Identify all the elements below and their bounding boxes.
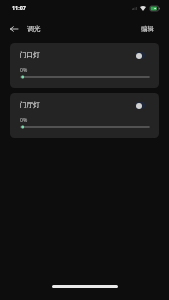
button[interactable]: Toggle light (135, 102, 145, 109)
button[interactable]: Toggle light (135, 52, 145, 59)
staticText: 0% (20, 66, 28, 73)
button[interactable]: 门厅灯 (10, 93, 159, 138)
button[interactable]: Brightness slider (20, 75, 149, 79)
button[interactable]: Back (0, 20, 47, 37)
button[interactable]: Brightness slider (20, 125, 149, 129)
staticText: 11:07 (12, 4, 26, 11)
staticText: 门厅灯 (20, 101, 40, 109)
staticText: 0% (20, 116, 28, 123)
staticText: 调光 (27, 24, 41, 33)
button[interactable]: 编辑 (131, 19, 169, 37)
staticText: 门口灯 (20, 51, 40, 59)
staticText: 编辑 (141, 25, 154, 33)
other: Back (10, 26, 18, 32)
button[interactable]: 门口灯 (10, 43, 159, 88)
